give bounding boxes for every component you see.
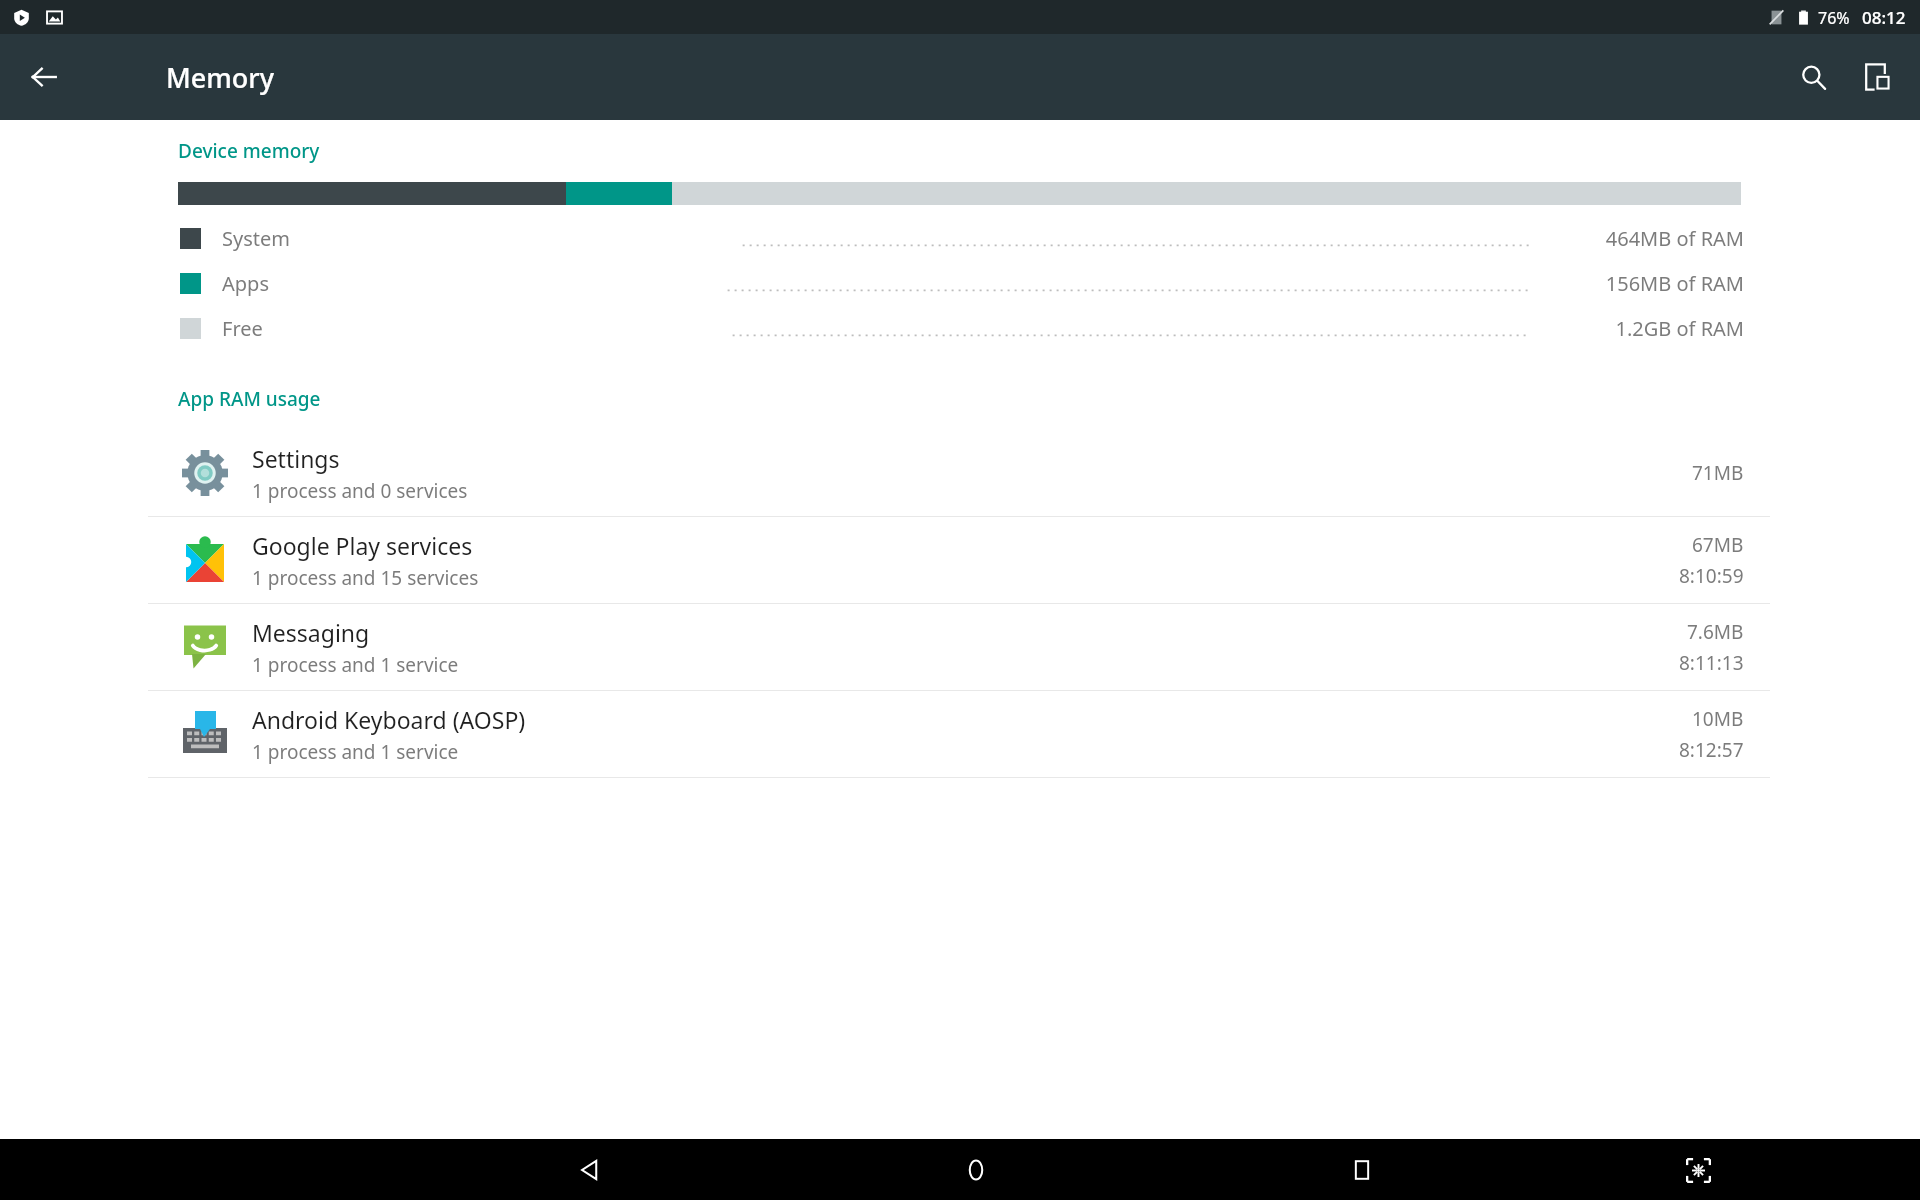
button[interactable]: Recent apps — [1332, 1140, 1392, 1200]
staticText: Settings — [252, 443, 340, 474]
staticText: 76% — [1818, 7, 1850, 29]
staticText: 1 process and 1 service — [252, 739, 459, 765]
staticText: Memory — [166, 59, 275, 96]
staticText: Google Play services — [252, 530, 473, 561]
staticText: 464MB of RAM — [1544, 225, 1744, 252]
staticText: Free — [222, 315, 263, 342]
staticText: 71MB — [1692, 460, 1744, 486]
staticText: 1 process and 0 services — [252, 478, 468, 504]
staticText: Device memory — [178, 138, 320, 164]
button[interactable]: Android Keyboard (AOSP) — [0, 691, 1920, 777]
staticText: Android Keyboard (AOSP) — [252, 704, 526, 735]
staticText: 1.2GB of RAM — [1544, 315, 1744, 342]
staticText: 8:12:57 — [1679, 737, 1744, 763]
button[interactable]: Messaging — [0, 604, 1920, 690]
staticText: 1 process and 1 service — [252, 652, 459, 678]
button[interactable]: Home — [946, 1140, 1006, 1200]
button[interactable]: Back — [560, 1140, 620, 1200]
button[interactable]: Google Play services — [0, 517, 1920, 603]
button[interactable]: Search — [1784, 48, 1842, 106]
staticText: 1 process and 15 services — [252, 565, 479, 591]
staticText: 8:10:59 — [1679, 563, 1744, 589]
staticText: Messaging — [252, 617, 370, 648]
staticText: Apps — [222, 270, 269, 297]
button[interactable]: Memory details — [1848, 48, 1906, 106]
staticText: 10MB — [1692, 706, 1744, 732]
staticText: 8:11:13 — [1679, 650, 1744, 676]
staticText: System — [222, 225, 290, 252]
staticText: 156MB of RAM — [1544, 270, 1744, 297]
button[interactable]: Settings — [0, 430, 1920, 516]
staticText: 08:12 — [1862, 6, 1906, 29]
button[interactable]: Back — [18, 51, 70, 103]
staticText: App RAM usage — [178, 386, 321, 412]
staticText: 67MB — [1692, 532, 1744, 558]
staticText: 7.6MB — [1687, 619, 1744, 645]
button[interactable]: Collapse — [1668, 1140, 1728, 1200]
